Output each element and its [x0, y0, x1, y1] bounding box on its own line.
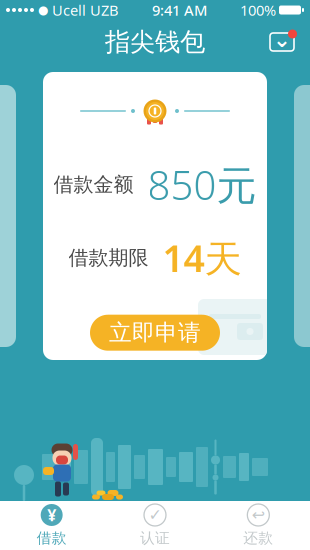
staticText: 850元 [147, 158, 256, 211]
staticText: 9:41 AM [152, 0, 207, 20]
staticText: ● [38, 3, 48, 17]
staticText: 立即申请 [109, 319, 201, 347]
button[interactable]: 立即申请 [90, 315, 220, 351]
staticText: ↩ [252, 506, 265, 524]
staticText: ⌄ [273, 27, 291, 52]
staticText: 认证 [140, 529, 170, 547]
staticText: Ucell UZB [52, 0, 119, 20]
staticText: 还款 [243, 529, 273, 547]
staticText: 借款 [37, 529, 67, 547]
button[interactable]: ↩ [207, 501, 310, 550]
staticText: ✓ [148, 506, 161, 524]
staticText: 借款期限 [68, 246, 148, 270]
button[interactable]: ¥ [0, 501, 103, 550]
staticText: ¥ [47, 504, 56, 526]
staticText: 100% [240, 0, 276, 20]
staticText: 指尖钱包 [105, 26, 205, 57]
button[interactable]: ✓ [103, 501, 207, 550]
staticText: 14天 [162, 233, 241, 283]
button[interactable]: Messages [262, 22, 302, 62]
staticText: 借款金额 [53, 172, 133, 197]
